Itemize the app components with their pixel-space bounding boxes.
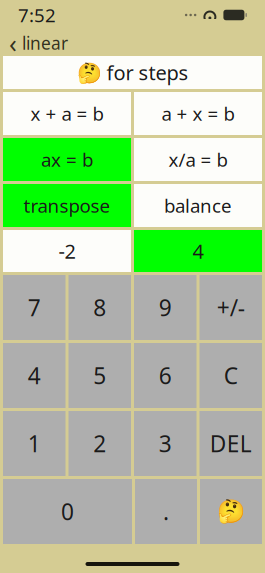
button[interactable]: transpose [3,184,131,227]
button[interactable]: 1 [3,411,65,476]
staticText: -2 [58,238,75,264]
button[interactable]: 5 [68,343,131,408]
staticText: C [224,360,238,390]
staticText: 6 [159,360,172,390]
button[interactable]: x/a = b [134,138,262,181]
button[interactable]: C [199,343,262,408]
staticText: 7 [28,292,41,322]
staticText: a + x = b [161,101,234,126]
button[interactable]: DEL [199,411,262,476]
button[interactable]: 0 [3,479,132,544]
staticText: 7:52 [18,3,56,27]
button[interactable]: 8 [68,275,131,340]
staticText: 🤔 [217,499,245,524]
staticText: x + a = b [30,101,103,126]
button[interactable]: ‹ [0,23,74,63]
staticText: 4 [192,238,203,264]
staticText: 4 [28,360,41,390]
staticText: transpose [23,193,110,218]
button[interactable]: 🤔 [200,479,262,544]
staticText: balance [164,193,232,218]
staticText: x/a = b [168,147,227,172]
button[interactable]: 3 [134,411,196,476]
button[interactable]: 🤔 for steps [3,56,262,89]
button[interactable]: 4 [3,343,65,408]
staticText: DEL [210,428,252,458]
button[interactable]: . [135,479,197,544]
button[interactable]: -2 [3,230,131,272]
button[interactable]: +/- [199,275,262,340]
staticText: 9 [159,292,172,322]
staticText: 0 [61,496,74,526]
button[interactable]: 4 [134,230,262,272]
button[interactable]: a + x = b [134,92,262,135]
staticText: 5 [93,360,106,390]
staticText: ‹ [9,26,17,60]
button[interactable]: 6 [134,343,196,408]
staticText: 🤔 for steps [76,59,188,86]
staticText: 3 [159,428,172,458]
button[interactable]: ax = b [3,138,131,181]
staticText: 8 [93,292,106,322]
staticText: ax = b [41,147,93,172]
button[interactable]: 9 [134,275,196,340]
button[interactable]: balance [134,184,262,227]
button[interactable]: 7 [3,275,65,340]
staticText: 1 [28,428,41,458]
staticText: . [163,496,169,526]
button[interactable]: x + a = b [3,92,131,135]
staticText: 2 [93,428,106,458]
staticText: linear [22,31,68,54]
staticText: +/- [217,292,245,322]
button[interactable]: 2 [68,411,131,476]
